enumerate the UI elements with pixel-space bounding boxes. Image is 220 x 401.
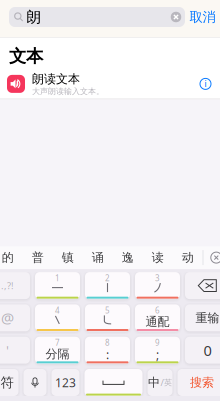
staticText: 逸 bbox=[122, 250, 134, 265]
staticText: 动 bbox=[182, 250, 194, 265]
staticText: 读 bbox=[152, 250, 164, 265]
button[interactable]: 逸 bbox=[113, 246, 143, 269]
button[interactable]: Zero bbox=[185, 337, 220, 364]
staticText: i bbox=[204, 79, 206, 89]
button[interactable]: Re-enter bbox=[185, 304, 220, 331]
button[interactable]: 诵 bbox=[83, 246, 113, 269]
button[interactable]: Dictation bbox=[23, 369, 46, 396]
staticText: 4 bbox=[55, 305, 60, 316]
staticText: 普 bbox=[32, 250, 44, 265]
staticText: 2 bbox=[105, 273, 110, 283]
button[interactable]: Stroke three bbox=[135, 272, 180, 299]
staticText: 5 bbox=[105, 305, 110, 316]
button[interactable]: Dismiss candidates bbox=[203, 246, 220, 269]
staticText: ' bbox=[6, 341, 9, 359]
staticText: 文本 bbox=[9, 46, 43, 67]
button[interactable]: Symbols bbox=[0, 369, 18, 396]
staticText: 通配 bbox=[145, 314, 169, 329]
button[interactable]: Stroke two bbox=[85, 272, 130, 299]
staticText: 0 bbox=[203, 340, 211, 360]
button[interactable]: 动 bbox=[173, 246, 203, 269]
staticText: .,?! bbox=[1, 279, 14, 292]
button[interactable]: 读 bbox=[143, 246, 173, 269]
staticText: 1 bbox=[55, 273, 60, 283]
button[interactable]: Delete bbox=[185, 272, 220, 299]
button[interactable]: Space bbox=[84, 369, 142, 396]
button[interactable]: 取消 bbox=[189, 7, 216, 27]
button[interactable]: Stroke one bbox=[35, 272, 80, 299]
staticText: ; bbox=[156, 347, 159, 363]
staticText: 6 bbox=[155, 305, 160, 316]
staticText: @ bbox=[1, 308, 14, 328]
staticText: 中 bbox=[148, 375, 160, 390]
button[interactable]: 朗读文本 bbox=[0, 72, 220, 96]
button[interactable]: Apostrophe bbox=[0, 337, 30, 364]
button[interactable]: Punctuation bbox=[0, 272, 30, 299]
staticText: 9 bbox=[155, 337, 160, 348]
staticText: 搜索 bbox=[190, 375, 214, 390]
staticText: 大声朗读输入文本。 bbox=[32, 86, 104, 96]
staticText: 符 bbox=[0, 374, 13, 391]
button[interactable]: 普 bbox=[23, 246, 53, 269]
staticText: 朗 bbox=[26, 8, 41, 26]
button[interactable]: Wildcard bbox=[135, 304, 180, 331]
button[interactable]: Clear text bbox=[169, 7, 183, 27]
staticText: 镇 bbox=[62, 250, 74, 265]
button[interactable]: 的 bbox=[0, 246, 23, 269]
staticText: 诵 bbox=[92, 250, 104, 265]
staticText: 8 bbox=[105, 337, 110, 348]
button[interactable]: Semicolon bbox=[135, 337, 180, 364]
staticText: 7 bbox=[55, 337, 60, 348]
staticText: 123 bbox=[55, 374, 76, 390]
button[interactable]: Separator bbox=[35, 337, 80, 364]
staticText: 的 bbox=[2, 250, 14, 265]
staticText: 重输 bbox=[195, 310, 219, 325]
staticText: 英 bbox=[164, 378, 172, 387]
button[interactable]: Stroke five bbox=[85, 304, 130, 331]
staticText: : bbox=[106, 347, 109, 363]
button[interactable]: Colon bbox=[85, 337, 130, 364]
staticText: 3 bbox=[155, 273, 160, 283]
staticText: 取消 bbox=[189, 9, 215, 25]
staticText: 朗读文本 bbox=[32, 72, 80, 86]
button[interactable]: Stroke four bbox=[35, 304, 80, 331]
button[interactable]: Numbers bbox=[51, 369, 79, 396]
staticText: / bbox=[160, 376, 163, 389]
button[interactable]: 镇 bbox=[53, 246, 83, 269]
button[interactable]: Language bbox=[147, 369, 172, 396]
staticText: 分隔 bbox=[45, 347, 69, 361]
button[interactable]: At sign bbox=[0, 304, 30, 331]
button[interactable]: Search bbox=[177, 369, 220, 396]
